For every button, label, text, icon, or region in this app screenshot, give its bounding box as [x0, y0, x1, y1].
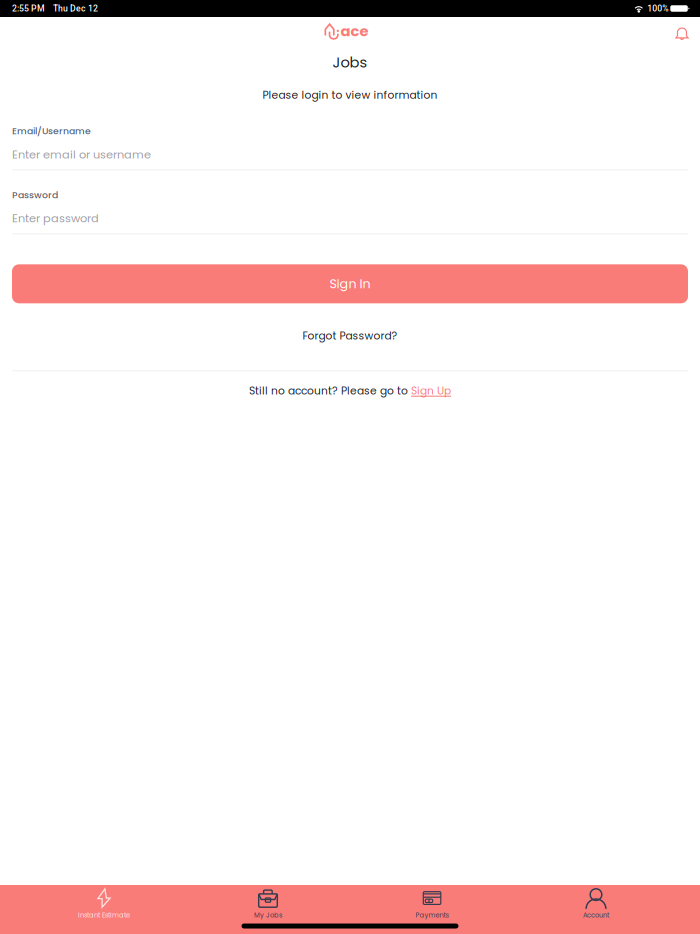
- staticText: Email/Username: [12, 124, 91, 138]
- staticText: Still no account? Please go to: [249, 383, 411, 398]
- staticText: 2:55 PM: [12, 3, 45, 14]
- staticText: Password: [12, 188, 58, 201]
- staticText: Sign In: [329, 275, 370, 293]
- staticText: Account: [583, 910, 609, 920]
- button[interactable]: Sign Up: [411, 383, 451, 398]
- button[interactable]: Account: [514, 885, 678, 918]
- button[interactable]: Instant Estimate: [22, 885, 186, 918]
- staticText: ace: [340, 21, 368, 41]
- staticText: Enter email or username: [12, 146, 151, 162]
- staticText: Please login to view information: [262, 87, 437, 102]
- staticText: Payments: [415, 910, 448, 920]
- button[interactable]: Sign In: [12, 264, 688, 303]
- button[interactable]: Forgot Password?: [12, 319, 688, 352]
- button[interactable]: Notifications: [671, 22, 693, 44]
- staticText: 100%: [647, 3, 668, 14]
- button[interactable]: My Jobs: [186, 885, 350, 918]
- staticText: Instant Estimate: [78, 910, 130, 920]
- button[interactable]: Payments: [350, 885, 514, 918]
- staticText: Thu Dec 12: [53, 3, 98, 14]
- staticText: Sign Up: [411, 383, 451, 398]
- staticText: Jobs: [332, 52, 367, 72]
- staticText: Enter password: [12, 210, 99, 226]
- staticText: Forgot Password?: [302, 328, 397, 343]
- staticText: My Jobs: [254, 910, 282, 920]
